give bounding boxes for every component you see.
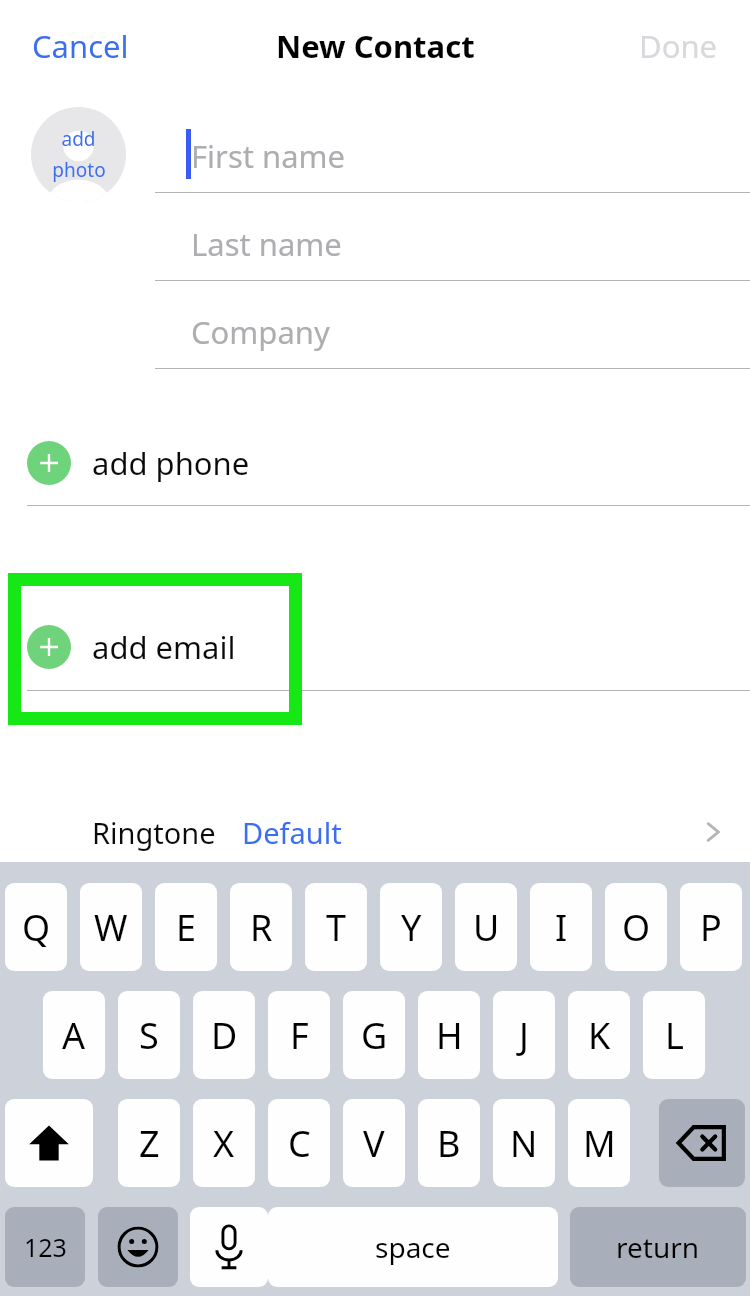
staticText: V	[363, 1119, 385, 1168]
button[interactable]: H	[418, 991, 480, 1079]
staticText: Q	[22, 903, 51, 952]
staticText: W	[94, 903, 128, 952]
staticText: U	[473, 903, 500, 952]
button[interactable]: V	[343, 1099, 405, 1187]
staticText: space	[375, 1228, 451, 1266]
staticText: C	[288, 1119, 311, 1168]
button[interactable]: add email	[27, 614, 750, 680]
staticText: B	[437, 1119, 461, 1168]
staticText: Done	[639, 25, 718, 67]
staticText: T	[326, 903, 347, 952]
staticText: New Contact	[276, 25, 475, 67]
button[interactable]: U	[455, 883, 517, 971]
staticText: N	[510, 1119, 538, 1168]
button[interactable]: Cancel	[18, 16, 143, 76]
staticText: I	[555, 903, 568, 952]
staticText: Last name	[191, 223, 342, 265]
staticText: O	[622, 903, 651, 952]
staticText: Cancel	[32, 25, 129, 67]
button[interactable]: M	[568, 1099, 630, 1187]
button[interactable]: Done	[625, 16, 732, 76]
button[interactable]: P	[680, 883, 742, 971]
button[interactable]: X	[193, 1099, 255, 1187]
button[interactable]: Delete	[659, 1099, 745, 1187]
button[interactable]: R	[230, 883, 292, 971]
button[interactable]: Last name	[155, 206, 750, 281]
staticText: add	[61, 126, 96, 152]
button[interactable]: Ringtone	[0, 801, 750, 863]
staticText: photo	[52, 157, 106, 183]
button[interactable]: I	[530, 883, 592, 971]
staticText: G	[361, 1011, 388, 1060]
button[interactable]: S	[118, 991, 180, 1079]
button[interactable]: E	[155, 883, 217, 971]
button[interactable]: space	[268, 1207, 558, 1287]
staticText: L	[665, 1011, 684, 1060]
staticText: Company	[191, 311, 330, 353]
staticText: Default	[242, 813, 342, 852]
button[interactable]: Z	[118, 1099, 180, 1187]
staticText: return	[616, 1228, 700, 1266]
staticText: K	[588, 1011, 611, 1060]
staticText: P	[700, 903, 722, 952]
button[interactable]: return	[570, 1207, 746, 1287]
button[interactable]: Company	[155, 294, 750, 369]
button[interactable]: J	[493, 991, 555, 1079]
staticText: S	[139, 1011, 159, 1060]
staticText: A	[62, 1011, 86, 1060]
button[interactable]: Q	[5, 883, 67, 971]
staticText: J	[519, 1011, 529, 1060]
staticText: E	[176, 903, 197, 952]
staticText: F	[290, 1011, 309, 1060]
button[interactable]: W	[80, 883, 142, 971]
button[interactable]: T	[305, 883, 367, 971]
button[interactable]: L	[643, 991, 705, 1079]
button[interactable]: C	[268, 1099, 330, 1187]
button[interactable]: O	[605, 883, 667, 971]
staticText: Y	[401, 903, 422, 952]
button[interactable]: Emoji	[98, 1207, 178, 1287]
staticText: R	[250, 903, 273, 952]
staticText: H	[436, 1011, 463, 1060]
staticText: D	[211, 1011, 238, 1060]
staticText: 123	[24, 1230, 67, 1264]
button[interactable]: D	[193, 991, 255, 1079]
staticText: First name	[191, 135, 346, 177]
button[interactable]: Y	[380, 883, 442, 971]
button[interactable]: Add photo	[31, 107, 126, 202]
button[interactable]: A	[43, 991, 105, 1079]
button[interactable]: Dictation	[190, 1207, 268, 1287]
staticText: add email	[92, 626, 236, 668]
staticText: Ringtone	[92, 813, 216, 852]
staticText: X	[213, 1119, 235, 1168]
button[interactable]: Shift	[5, 1099, 93, 1187]
button[interactable]: F	[268, 991, 330, 1079]
button[interactable]: B	[418, 1099, 480, 1187]
button[interactable]: 123	[5, 1207, 85, 1287]
button[interactable]: K	[568, 991, 630, 1079]
staticText: Z	[139, 1119, 160, 1168]
button[interactable]: First name	[155, 118, 750, 193]
staticText: M	[583, 1119, 616, 1168]
button[interactable]: N	[493, 1099, 555, 1187]
button[interactable]: G	[343, 991, 405, 1079]
staticText: add phone	[92, 442, 250, 484]
button[interactable]: add phone	[27, 430, 750, 496]
